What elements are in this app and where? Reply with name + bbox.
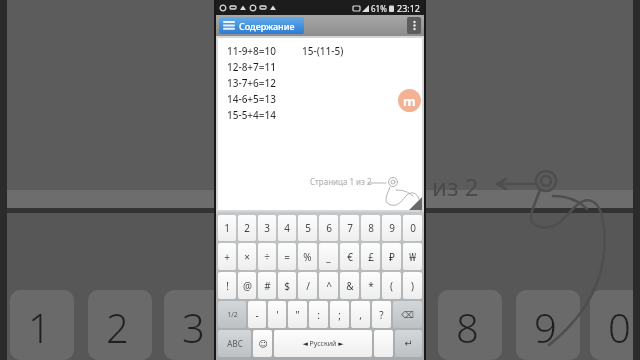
- staticText: ): [411, 279, 414, 293]
- button[interactable]: 6: [319, 215, 338, 241]
- button[interactable]: ₽: [382, 243, 401, 270]
- button[interactable]: 4: [278, 215, 296, 241]
- staticText: _: [326, 250, 331, 264]
- staticText: 8: [456, 300, 479, 354]
- button[interactable]: :: [309, 301, 328, 328]
- button[interactable]: ₩: [403, 243, 422, 270]
- staticText: 8: [368, 221, 374, 235]
- button[interactable]: 1: [218, 215, 236, 241]
- staticText: +: [224, 250, 230, 264]
- button[interactable]: 7: [340, 215, 359, 241]
- staticText: #: [264, 279, 271, 293]
- staticText: ⌫: [401, 310, 414, 320]
- staticText: 6: [326, 221, 332, 235]
- staticText: 11-9+8=10: [227, 44, 276, 58]
- button[interactable]: 0: [403, 215, 422, 241]
- staticText: 7: [347, 221, 353, 235]
- staticText: ABC: [227, 338, 243, 349]
- staticText: m: [403, 92, 416, 110]
- staticText: 0: [410, 221, 416, 235]
- staticText: 2: [244, 221, 250, 235]
- staticText: 12-8+7=11: [227, 60, 276, 74]
- staticText: 13-7+6=12: [227, 76, 276, 90]
- staticText: 1: [224, 221, 230, 235]
- staticText: ☺: [258, 339, 268, 349]
- staticText: %: [303, 250, 312, 264]
- button[interactable]: More options: [407, 17, 421, 34]
- staticText: *: [368, 279, 374, 293]
- staticText: &: [346, 279, 354, 293]
- staticText: 14-6+5=13: [227, 92, 276, 106]
- button[interactable]: Содержание: [219, 17, 304, 34]
- button[interactable]: 3: [258, 215, 276, 241]
- button[interactable]: ÷: [258, 243, 276, 270]
- button[interactable]: ^: [319, 272, 338, 299]
- staticText: ₽: [389, 250, 395, 264]
- staticText: €: [347, 250, 353, 264]
- staticText: ÷: [264, 250, 270, 264]
- staticText: :: [317, 308, 320, 322]
- button[interactable]: €: [340, 243, 359, 270]
- button[interactable]: ': [268, 301, 286, 328]
- button[interactable]: 5: [298, 215, 317, 241]
- button[interactable]: 2: [238, 215, 256, 241]
- staticText: 5: [305, 221, 311, 235]
- button[interactable]: ": [288, 301, 307, 328]
- staticText: 9: [389, 221, 395, 235]
- staticText: 15-5+4=14: [227, 108, 276, 122]
- button[interactable]: $: [278, 272, 296, 299]
- button[interactable]: 11-9+8=10: [218, 38, 422, 210]
- button[interactable]: #: [258, 272, 276, 299]
- button[interactable]: Settings: [374, 330, 393, 357]
- staticText: 3: [182, 300, 205, 354]
- staticText: 15-(11-5): [302, 44, 344, 58]
- button[interactable]: ×: [238, 243, 256, 270]
- staticText: ◄ Русский ►: [302, 339, 344, 349]
- staticText: ": [295, 308, 300, 322]
- staticText: (: [390, 279, 393, 293]
- staticText: !: [226, 279, 229, 293]
- button[interactable]: &: [340, 272, 359, 299]
- staticText: Страница 1 из 2: [310, 176, 372, 187]
- button[interactable]: Backspace: [393, 301, 422, 328]
- button[interactable]: ◄ Русский ►: [274, 330, 372, 357]
- button[interactable]: (: [382, 272, 401, 299]
- staticText: 23:12: [397, 2, 421, 14]
- button[interactable]: ): [403, 272, 422, 299]
- button[interactable]: _: [319, 243, 338, 270]
- staticText: 3: [264, 221, 270, 235]
- button[interactable]: 1/2: [218, 301, 246, 328]
- staticText: =: [284, 250, 290, 264]
- button[interactable]: ABC: [218, 330, 251, 357]
- button[interactable]: %: [298, 243, 317, 270]
- staticText: -: [255, 308, 259, 322]
- button[interactable]: ;: [330, 301, 349, 328]
- staticText: ,: [359, 308, 362, 322]
- staticText: из 2: [432, 170, 479, 203]
- button[interactable]: !: [218, 272, 236, 299]
- staticText: ?: [379, 308, 384, 322]
- button[interactable]: ?: [372, 301, 391, 328]
- staticText: 0: [608, 300, 631, 354]
- button[interactable]: @: [238, 272, 256, 299]
- staticText: 2: [106, 300, 129, 354]
- staticText: £: [368, 250, 374, 264]
- staticText: ^: [326, 279, 332, 293]
- button[interactable]: £: [361, 243, 380, 270]
- staticText: $: [284, 279, 290, 293]
- button[interactable]: ,: [351, 301, 370, 328]
- staticText: 1/2: [227, 310, 238, 320]
- button[interactable]: Enter: [395, 330, 422, 357]
- button[interactable]: -: [248, 301, 266, 328]
- button[interactable]: +: [218, 243, 236, 270]
- button[interactable]: *: [361, 272, 380, 299]
- staticText: 4: [284, 221, 290, 235]
- staticText: @: [243, 279, 252, 293]
- staticText: 9: [534, 300, 557, 354]
- button[interactable]: /: [298, 272, 317, 299]
- button[interactable]: =: [278, 243, 296, 270]
- staticText: 1: [28, 300, 51, 354]
- button[interactable]: 9: [382, 215, 401, 241]
- button[interactable]: Emoji: [253, 330, 272, 357]
- button[interactable]: 8: [361, 215, 380, 241]
